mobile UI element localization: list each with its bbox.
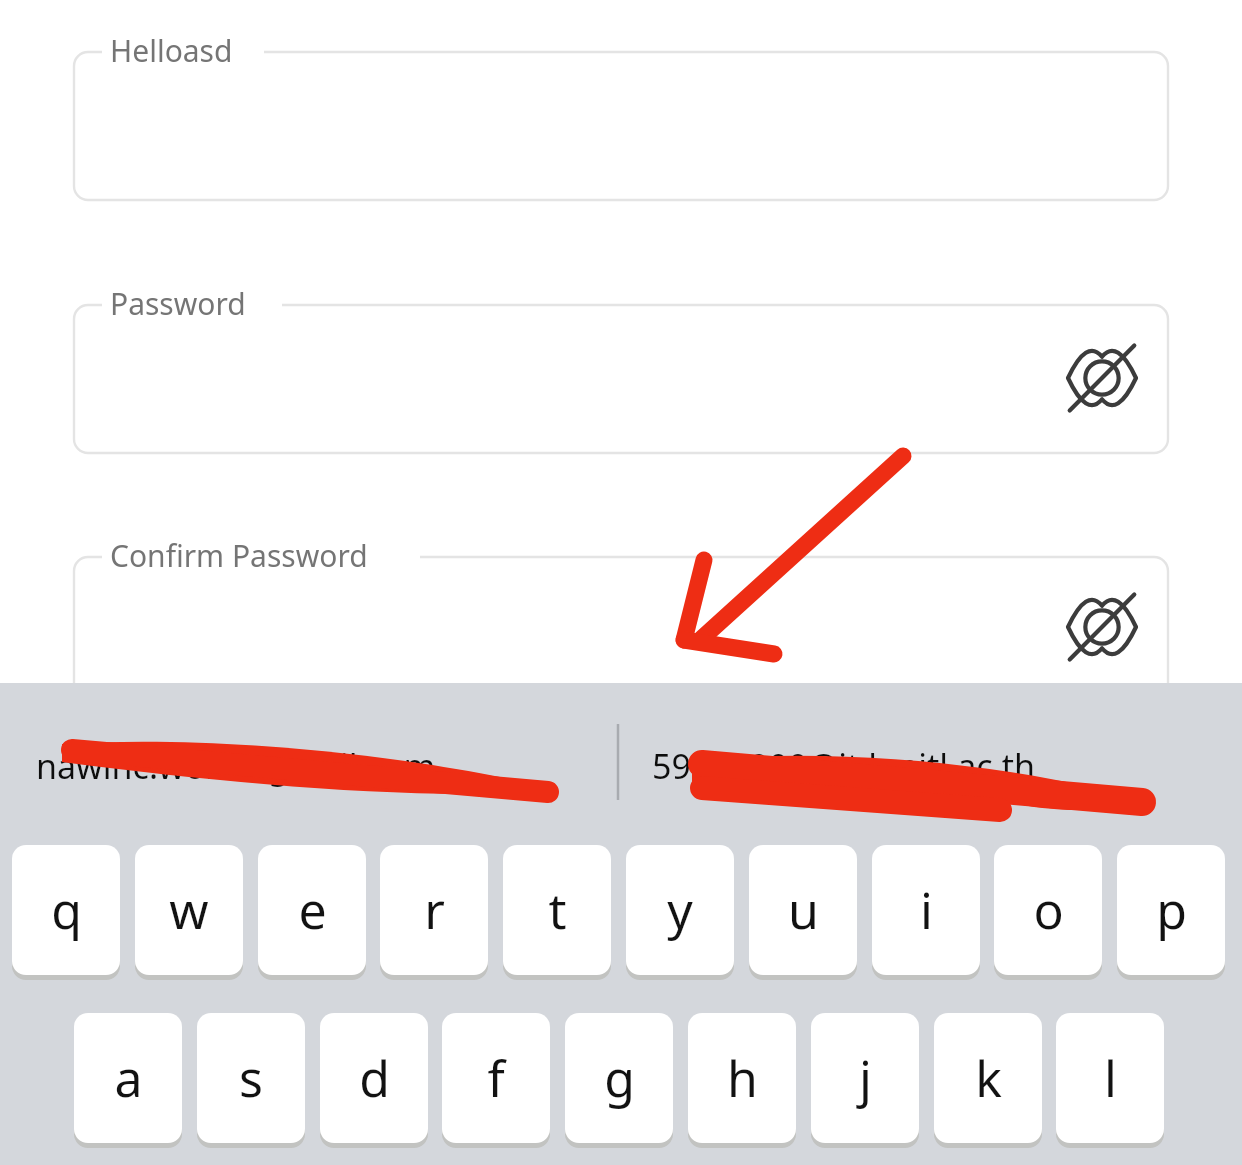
staticText: u: [788, 876, 819, 944]
button[interactable]: Show password: [1060, 336, 1144, 420]
staticText: h: [727, 1044, 758, 1112]
button[interactable]: r: [380, 845, 488, 975]
button[interactable]: w: [135, 845, 243, 975]
staticText: Password: [110, 283, 246, 324]
button[interactable]: d: [320, 1013, 428, 1143]
staticText: y: [667, 876, 693, 944]
staticText: 59070000@it.kmitl.ac.th: [652, 743, 1035, 789]
staticText: Confirm Password: [110, 535, 368, 576]
button[interactable]: a: [74, 1013, 182, 1143]
staticText: a: [114, 1044, 143, 1112]
button[interactable]: f: [442, 1013, 550, 1143]
staticText: l: [1104, 1044, 1117, 1112]
staticText: Helloasd: [110, 30, 233, 71]
staticText: i: [920, 876, 933, 944]
staticText: r: [424, 876, 445, 944]
button[interactable]: s: [197, 1013, 305, 1143]
button[interactable]: u: [749, 845, 857, 975]
button[interactable]: g: [565, 1013, 673, 1143]
button[interactable]: t: [503, 845, 611, 975]
button[interactable]: h: [688, 1013, 796, 1143]
button[interactable]: e: [258, 845, 366, 975]
staticText: o: [1033, 876, 1064, 944]
staticText: t: [548, 876, 567, 944]
staticText: s: [239, 1044, 263, 1112]
staticText: k: [975, 1044, 1002, 1112]
button[interactable]: Show confirm password: [1060, 585, 1144, 669]
button[interactable]: p: [1117, 845, 1225, 975]
staticText: w: [169, 876, 209, 944]
button[interactable]: j: [811, 1013, 919, 1143]
button[interactable]: y: [626, 845, 734, 975]
button[interactable]: 59070000@it.kmitl.ac.th: [652, 733, 1212, 799]
staticText: j: [859, 1044, 872, 1112]
staticText: f: [487, 1044, 505, 1112]
staticText: g: [604, 1044, 635, 1112]
button[interactable]: q: [12, 845, 120, 975]
button[interactable]: i: [872, 845, 980, 975]
staticText: nawinc.work@gmail.com: [36, 743, 436, 789]
staticText: d: [359, 1044, 390, 1112]
staticText: q: [51, 876, 82, 944]
staticText: p: [1156, 876, 1187, 944]
button[interactable]: o: [994, 845, 1102, 975]
button[interactable]: nawinc.work@gmail.com: [36, 733, 596, 799]
staticText: e: [298, 876, 327, 944]
button[interactable]: l: [1056, 1013, 1164, 1143]
button[interactable]: k: [934, 1013, 1042, 1143]
